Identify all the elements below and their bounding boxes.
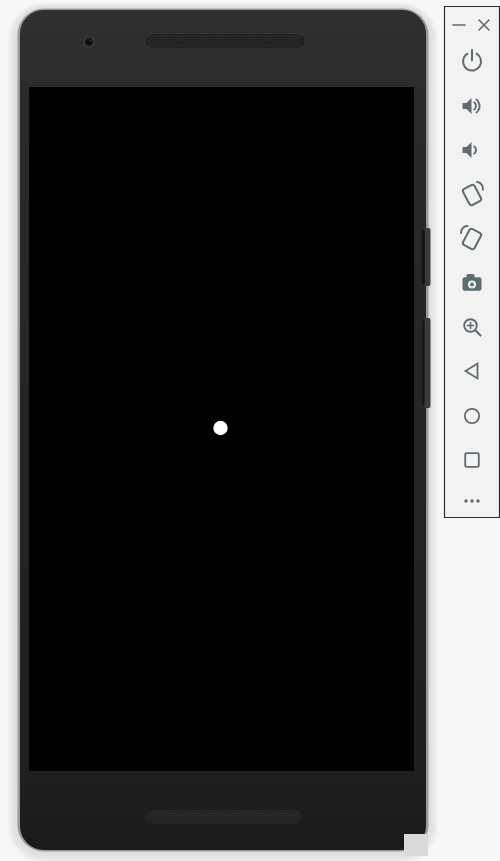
button[interactable]: Take screenshot <box>457 268 487 298</box>
button[interactable]: Zoom <box>457 312 487 342</box>
button[interactable]: Volume down <box>457 135 487 165</box>
button[interactable]: Rotate left <box>457 180 487 210</box>
button[interactable]: Back <box>457 356 487 386</box>
button[interactable]: Rotate right <box>457 224 487 254</box>
button[interactable]: Home <box>457 401 487 431</box>
button[interactable]: Close <box>473 14 495 36</box>
button[interactable]: Minimize <box>448 14 470 36</box>
button[interactable]: Overview <box>457 445 487 475</box>
button[interactable]: Power <box>457 46 487 76</box>
button[interactable]: More <box>457 486 487 516</box>
button[interactable]: Volume up <box>457 91 487 121</box>
